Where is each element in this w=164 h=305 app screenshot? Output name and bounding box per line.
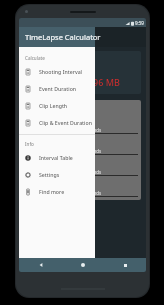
staticText: Info	[25, 141, 34, 147]
staticText: seconds	[84, 127, 102, 133]
staticText: seconds	[84, 190, 102, 196]
staticText: 9:59	[135, 20, 144, 26]
staticText: TimeLapse Calculator	[25, 32, 101, 42]
staticText: seconds	[84, 148, 102, 154]
staticText: Shooting Interval	[39, 68, 82, 75]
button[interactable]: Shooting Interval	[19, 63, 95, 80]
button[interactable]: Clip & Event Duration	[19, 114, 95, 131]
button[interactable]: Interval Table	[19, 149, 95, 166]
staticText: seconds	[84, 169, 102, 175]
staticText: Clip Length	[39, 102, 68, 109]
staticText: Interval Table	[39, 154, 73, 161]
staticText: Event Duration	[39, 85, 77, 92]
button[interactable]: Find more photography apps	[19, 183, 95, 200]
button[interactable]: Recent apps	[104, 258, 146, 272]
staticText: Find more photography apps	[39, 188, 95, 195]
staticText: Clip & Event Duration	[39, 119, 92, 126]
staticText: 96 MB	[93, 76, 120, 88]
button[interactable]: Home	[62, 258, 104, 272]
button[interactable]: Event Duration	[19, 80, 95, 97]
button[interactable]: Settings	[19, 166, 95, 183]
button[interactable]: Back	[19, 258, 62, 272]
staticText: Calculate	[25, 55, 45, 61]
staticText: Settings	[39, 171, 60, 178]
button[interactable]: Clip Length	[19, 97, 95, 114]
